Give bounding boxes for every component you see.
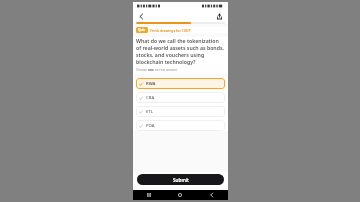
staticText: POA (146, 123, 155, 129)
button[interactable]: Back (136, 11, 147, 22)
staticText: Quiz (138, 28, 146, 32)
button[interactable]: CBA (136, 92, 225, 103)
staticText: one (148, 68, 154, 72)
staticText: Fresh drawings for 100 P (150, 28, 191, 33)
button[interactable]: Back (196, 190, 228, 200)
staticText: Submit (173, 177, 189, 183)
button[interactable]: Recents (133, 190, 164, 200)
staticText: What do we call the tokenization of real… (136, 37, 225, 65)
button[interactable]: Home (164, 190, 196, 200)
button[interactable]: ETL (136, 106, 225, 117)
button[interactable]: Submit (137, 174, 224, 185)
staticText: ETL (146, 109, 153, 115)
staticText: RWA (146, 81, 156, 87)
staticText: Choose (136, 68, 148, 72)
button[interactable]: RWA (136, 78, 225, 89)
button[interactable]: POA (136, 120, 225, 131)
staticText: correct answer (154, 68, 178, 72)
button[interactable]: Share (214, 11, 225, 22)
staticText: CBA (146, 95, 155, 101)
